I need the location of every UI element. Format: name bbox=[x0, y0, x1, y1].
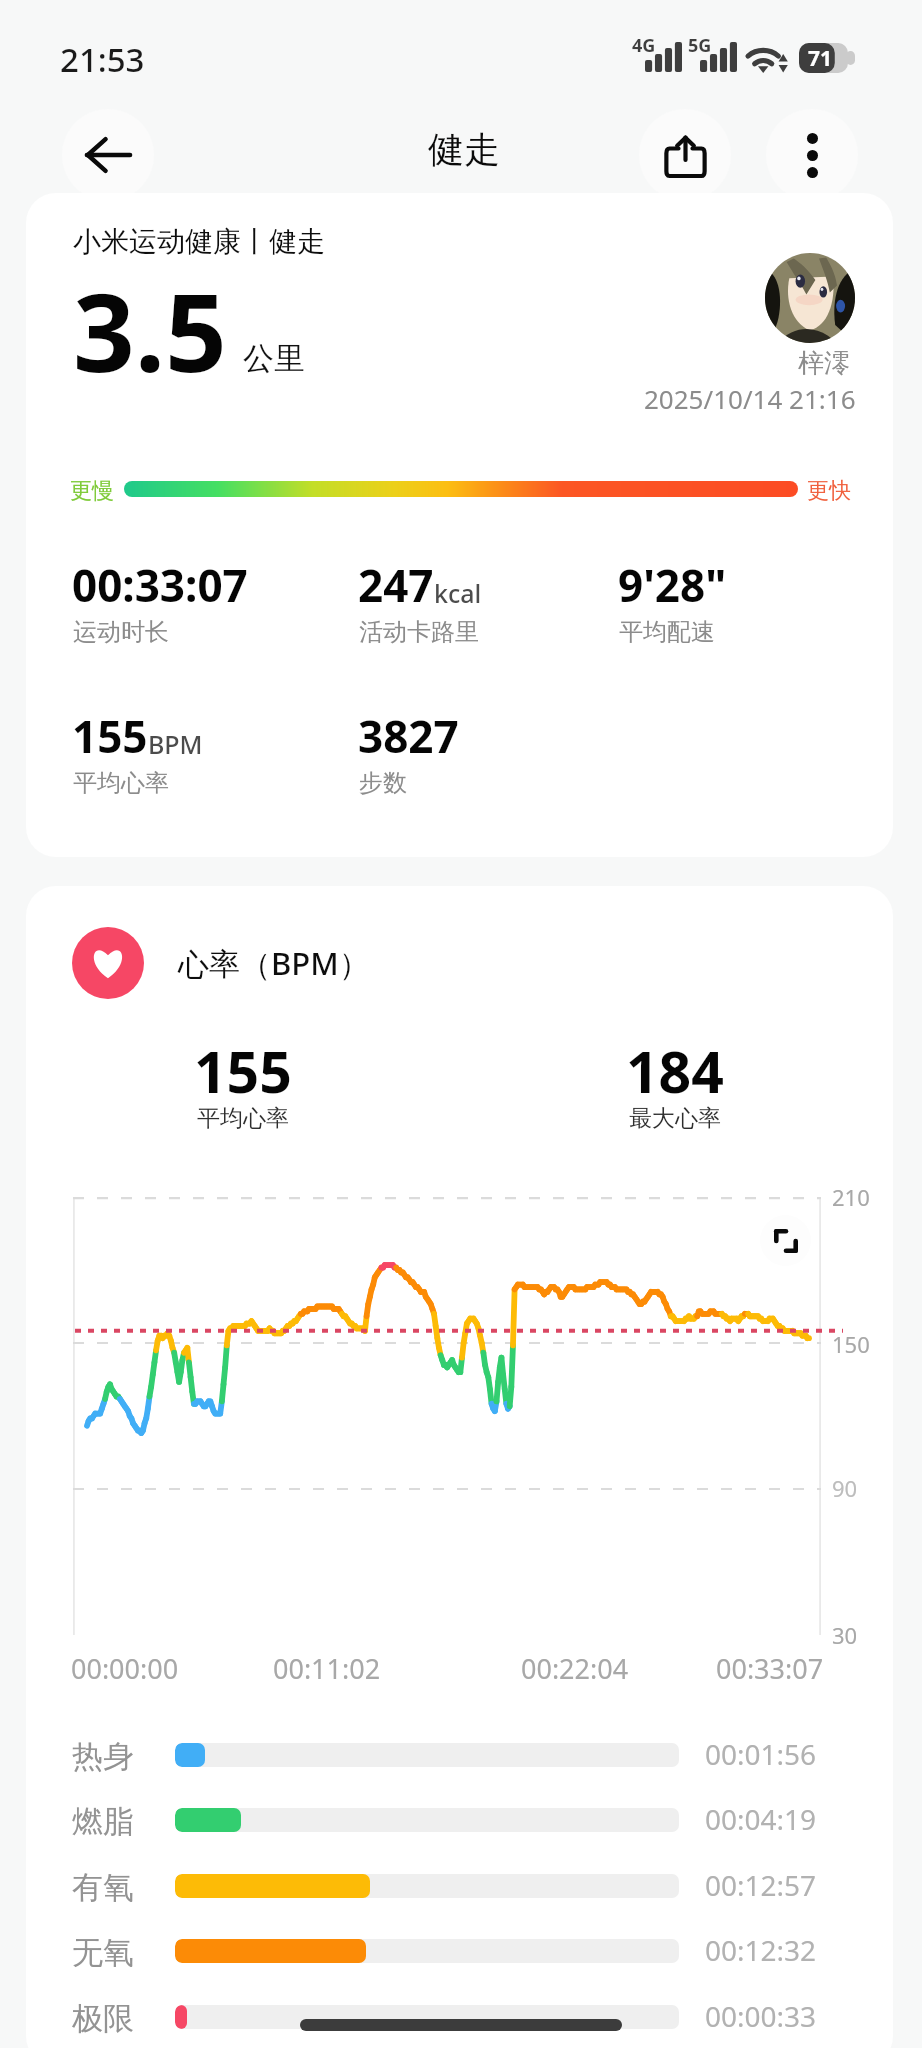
staticText: 00:22:04 bbox=[521, 1650, 629, 1687]
staticText: BPM bbox=[148, 727, 203, 761]
button[interactable]: Share bbox=[639, 109, 731, 201]
staticText: 00:04:19 bbox=[705, 1800, 817, 1838]
staticText: 3827 bbox=[358, 706, 459, 766]
staticText: 健走 bbox=[428, 127, 500, 172]
staticText: 活动卡路里 bbox=[359, 617, 479, 647]
staticText: 21:53 bbox=[60, 37, 145, 82]
staticText: 平均心率 bbox=[197, 1104, 289, 1133]
staticText: 有氧 bbox=[72, 1868, 134, 1907]
staticText: 最大心率 bbox=[629, 1104, 721, 1133]
staticText: 运动时长 bbox=[73, 617, 169, 647]
staticText: 公里 bbox=[243, 339, 305, 378]
staticText: 00:00:33 bbox=[705, 1997, 817, 2035]
staticText: kcal bbox=[434, 576, 482, 610]
staticText: 热身 bbox=[72, 1737, 134, 1776]
button[interactable]: Expand chart bbox=[760, 1215, 811, 1266]
staticText: 2025/10/14 21:16 bbox=[644, 381, 856, 416]
staticText: 梓澪 bbox=[798, 347, 850, 380]
staticText: 71 bbox=[808, 44, 833, 73]
staticText: 00:00:00 bbox=[71, 1650, 179, 1687]
staticText: 燃脂 bbox=[72, 1802, 134, 1841]
staticText: 00:01:56 bbox=[705, 1735, 817, 1773]
staticText: 00:12:57 bbox=[705, 1866, 817, 1904]
staticText: 90 bbox=[832, 1473, 858, 1503]
staticText: 平均配速 bbox=[619, 617, 715, 647]
button[interactable]: Profile picture bbox=[765, 253, 855, 343]
staticText: 4G bbox=[632, 33, 656, 58]
staticText: 5G bbox=[688, 33, 712, 58]
staticText: 00:33:07 bbox=[716, 1650, 824, 1687]
button[interactable]: Back bbox=[62, 109, 154, 201]
staticText: 150 bbox=[832, 1329, 870, 1359]
staticText: 210 bbox=[832, 1182, 870, 1212]
staticText: 更快 bbox=[807, 477, 851, 505]
staticText: 00:12:32 bbox=[705, 1931, 817, 1969]
staticText: 无氧 bbox=[72, 1933, 134, 1972]
staticText: 步数 bbox=[359, 768, 407, 798]
staticText: 小米运动健康丨健走 bbox=[73, 224, 325, 259]
staticText: 9'28" bbox=[618, 555, 727, 615]
staticText: 00:11:02 bbox=[273, 1650, 381, 1687]
staticText: 3.5 bbox=[73, 257, 227, 404]
staticText: 心率（BPM） bbox=[178, 942, 370, 984]
staticText: 184 bbox=[626, 1032, 724, 1110]
staticText: 155 bbox=[194, 1032, 292, 1110]
staticText: 平均心率 bbox=[73, 768, 169, 798]
staticText: 更慢 bbox=[70, 477, 114, 505]
staticText: 30 bbox=[832, 1620, 858, 1650]
staticText: 00:33:07 bbox=[72, 555, 248, 615]
button[interactable]: More options bbox=[766, 109, 858, 201]
staticText: 极限 bbox=[72, 1999, 134, 2038]
staticText: 247 bbox=[358, 555, 434, 615]
staticText: 155 bbox=[72, 706, 148, 766]
